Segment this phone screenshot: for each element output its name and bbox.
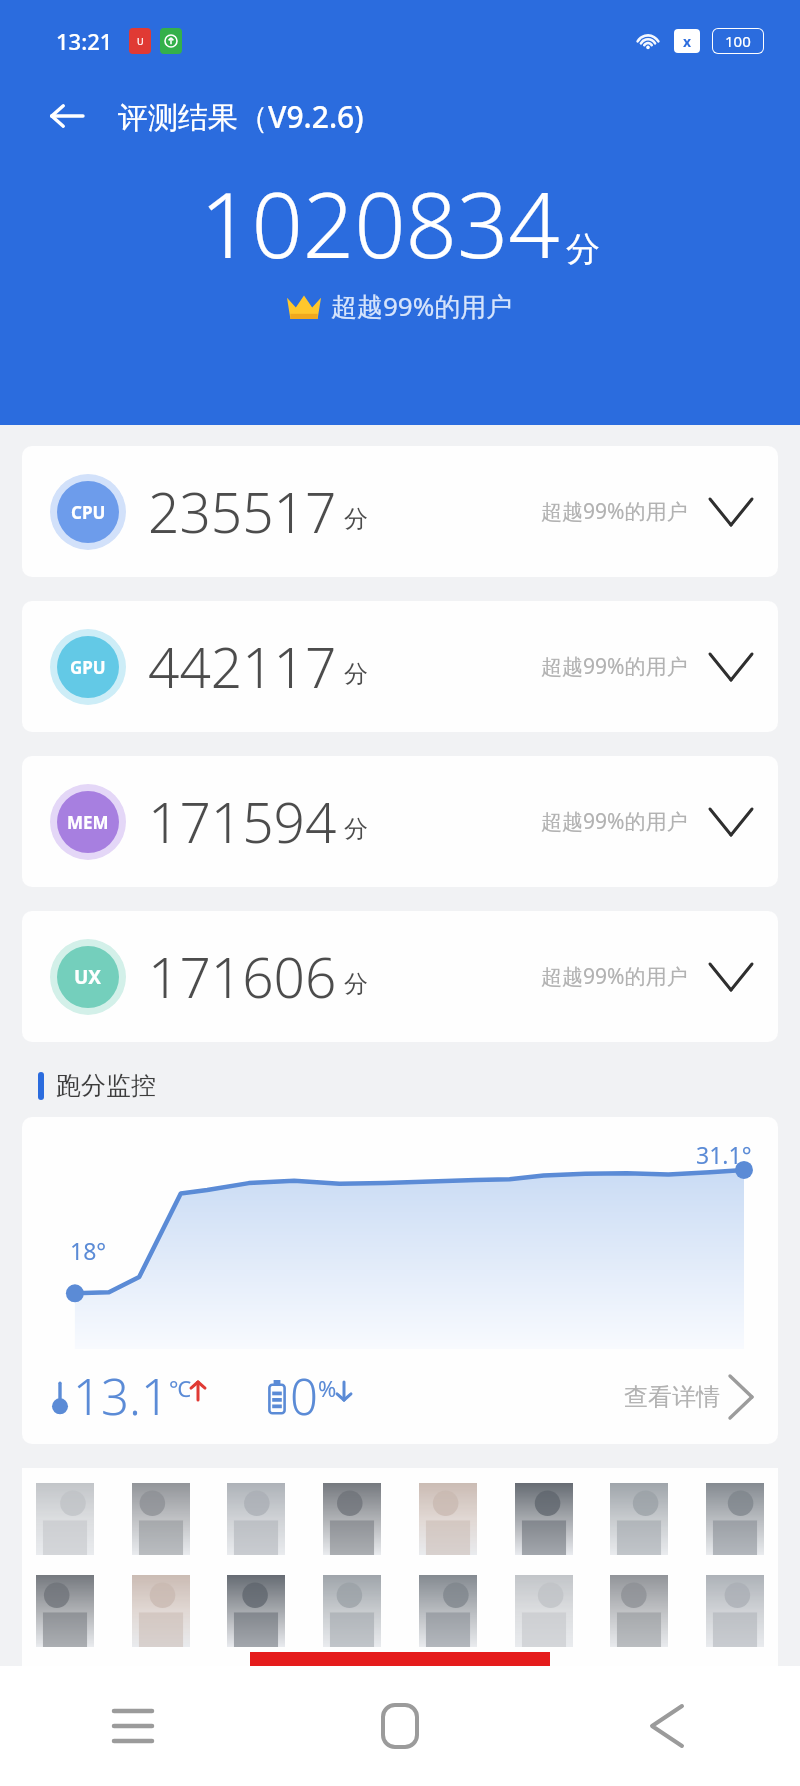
staticText: 查看详情 — [624, 1382, 720, 1412]
staticText: 跑分监控 — [56, 1070, 156, 1101]
button[interactable]: GPU — [22, 601, 778, 732]
button[interactable]: Home — [266, 1666, 533, 1786]
staticText: 18° — [70, 1235, 107, 1266]
staticText: 13:21 — [56, 26, 113, 56]
staticText: GPU — [70, 656, 106, 679]
staticText: % — [318, 1373, 337, 1403]
staticText: 13.1 — [73, 1363, 169, 1430]
button[interactable]: Back — [38, 88, 94, 144]
staticText: 超越99%的用户 — [541, 962, 688, 991]
staticText: 分 — [344, 814, 368, 844]
staticText: ℃ — [169, 1373, 191, 1403]
staticText: x — [683, 32, 692, 51]
button[interactable]: CPU — [22, 446, 778, 577]
staticText: 171594 — [148, 784, 337, 859]
staticText: 442117 — [148, 629, 337, 704]
staticText: MEM — [67, 811, 109, 834]
staticText: 1020834 — [200, 162, 560, 285]
staticText: 0 — [290, 1363, 318, 1430]
staticText: CPU — [71, 501, 106, 524]
button[interactable]: Back — [533, 1666, 800, 1786]
staticText: 超越99%的用户 — [541, 807, 688, 836]
staticText: 超越99%的用户 — [541, 497, 688, 526]
staticText: 分 — [344, 969, 368, 999]
staticText: 分 — [566, 228, 600, 271]
button[interactable]: MEM — [22, 756, 778, 887]
staticText: UX — [74, 964, 102, 990]
staticText: U — [137, 35, 144, 47]
staticText: 235517 — [148, 474, 337, 549]
staticText: 超越99%的用户 — [541, 652, 688, 681]
staticText: 171606 — [148, 939, 337, 1014]
button[interactable]: 查看详情 — [624, 1376, 752, 1418]
staticText: 100 — [725, 31, 751, 51]
staticText: 31.1° — [696, 1139, 752, 1170]
button[interactable]: UX — [22, 911, 778, 1042]
button[interactable]: Recents — [0, 1666, 266, 1786]
staticText: 分 — [344, 659, 368, 689]
staticText: 超越99%的用户 — [331, 288, 513, 324]
staticText: 评测结果（V9.2.6) — [118, 96, 364, 137]
staticText: 分 — [344, 504, 368, 534]
